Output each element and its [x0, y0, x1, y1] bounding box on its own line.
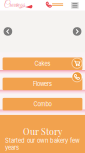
button[interactable]: Next slide — [73, 27, 81, 36]
staticText: Cravings — [4, 0, 25, 10]
button[interactable]: Call us — [71, 71, 82, 82]
staticText: Started our own bakery few years — [5, 137, 80, 151]
staticText: Flowers — [33, 81, 52, 87]
staticText: Cakes — [34, 60, 50, 67]
staticText: Our Story — [23, 125, 62, 137]
button[interactable]: Shopping cart — [71, 58, 82, 69]
button[interactable]: Cakes — [3, 57, 82, 70]
button[interactable]: Combo — [3, 98, 82, 110]
button[interactable]: Previous slide — [4, 27, 12, 36]
button[interactable]: Flowers — [3, 78, 82, 90]
button[interactable]: Menu — [71, 2, 79, 9]
button[interactable]: Cravings home — [3, 0, 35, 10]
staticText: Combo — [33, 101, 51, 108]
